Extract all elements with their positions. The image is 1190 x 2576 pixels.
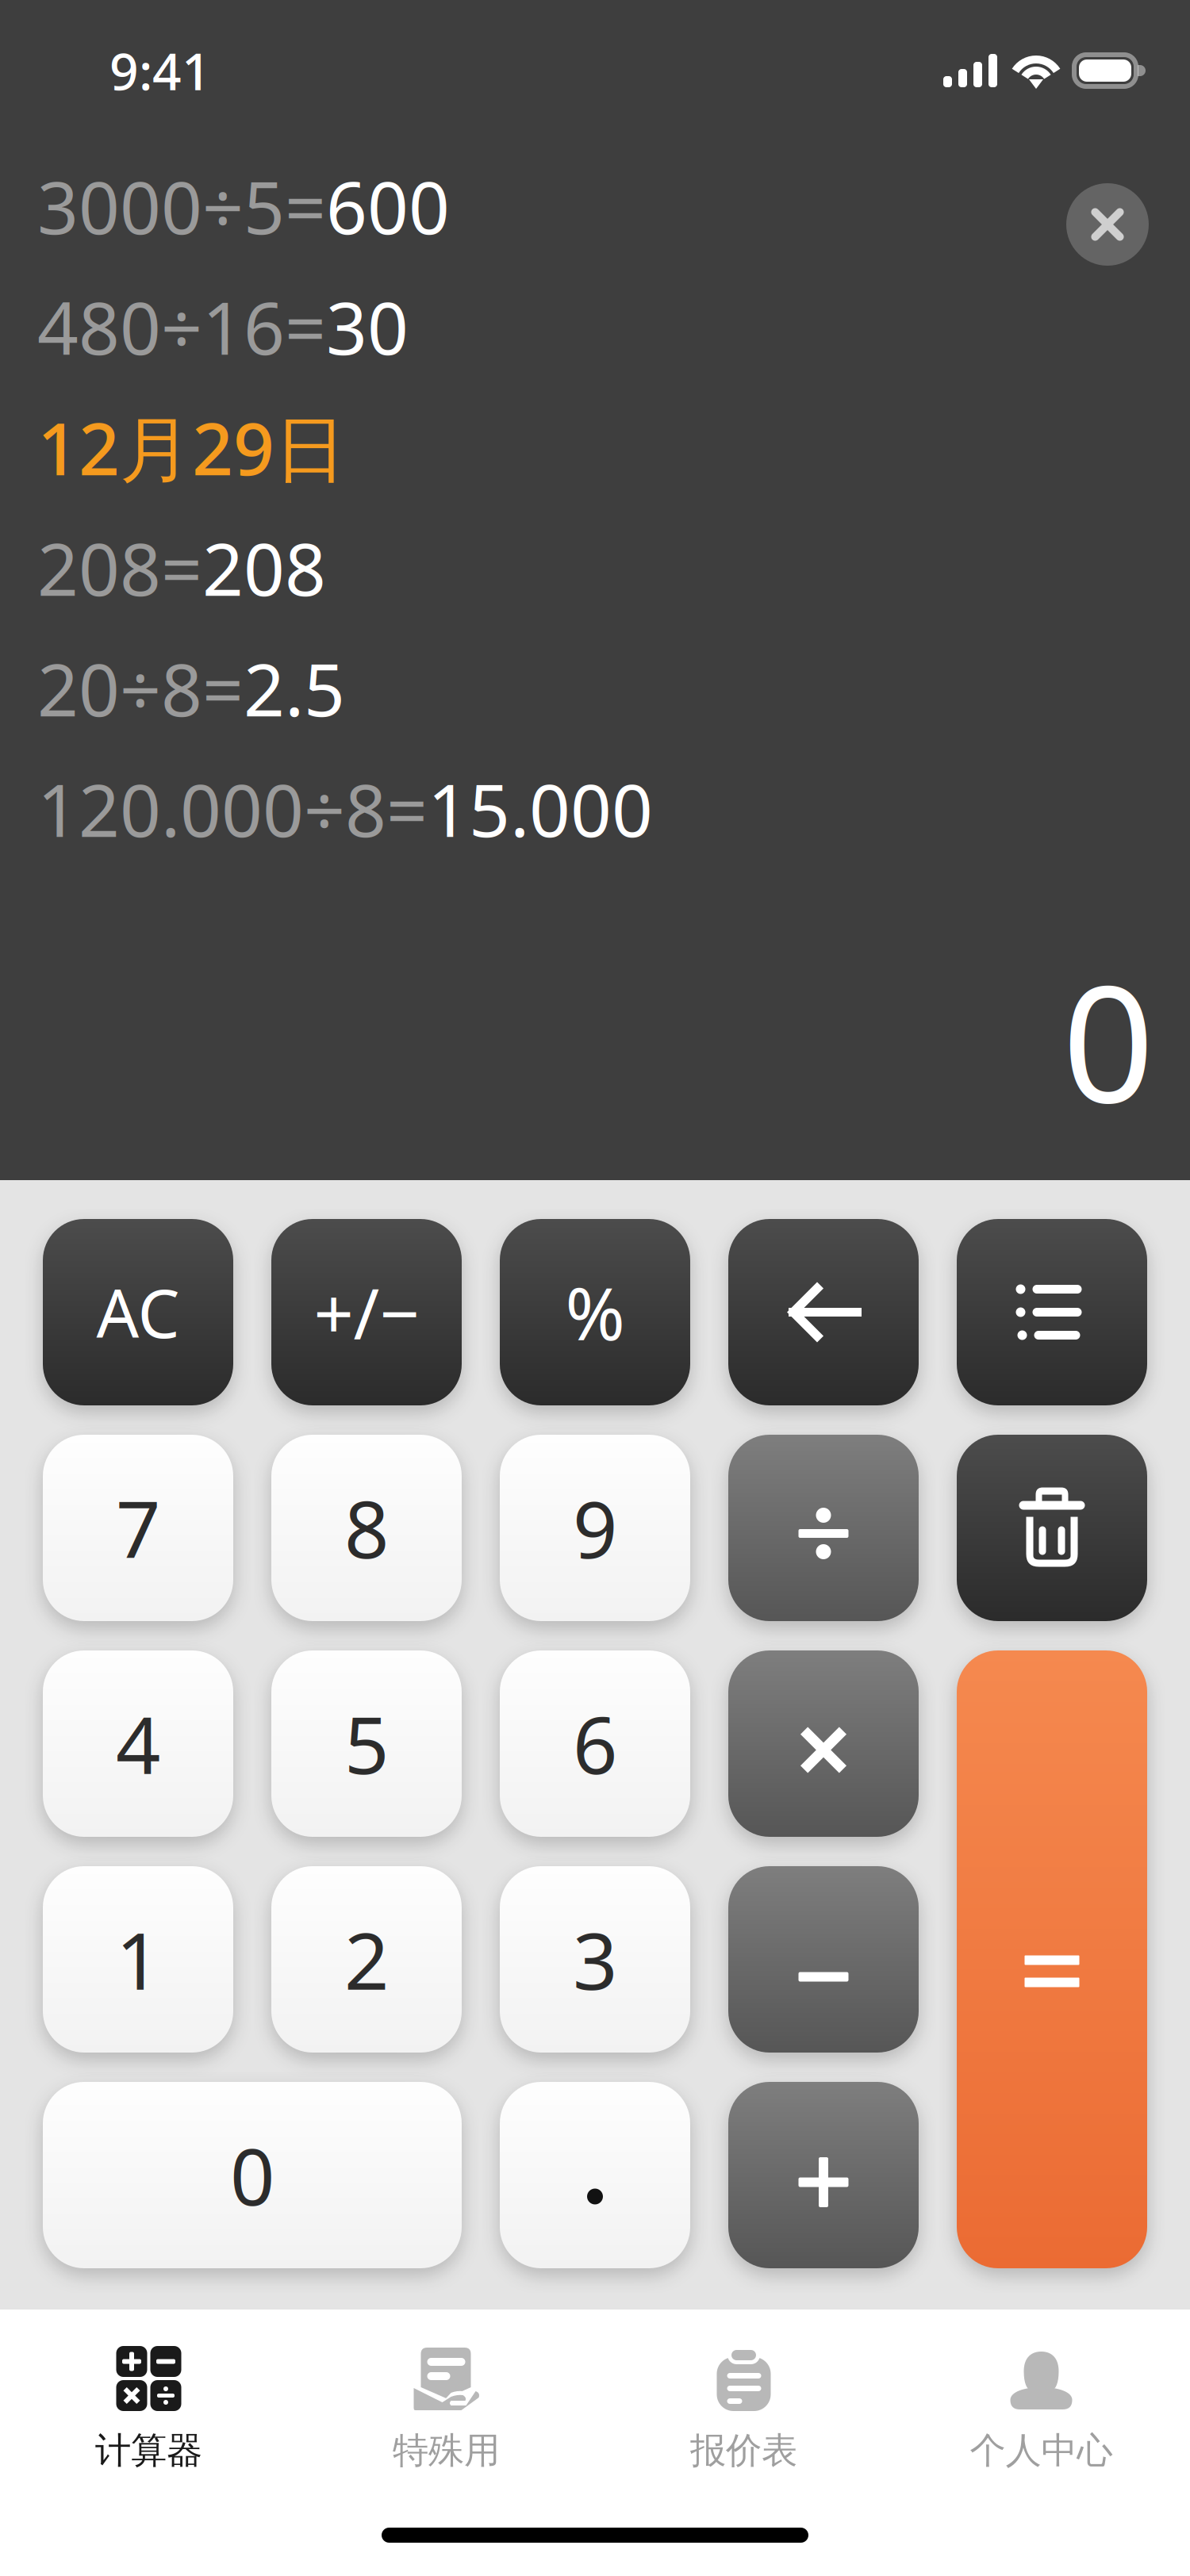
- button[interactable]: 3: [500, 1866, 690, 2053]
- button[interactable]: Clear history: [1066, 183, 1149, 266]
- staticText: 2: [344, 1907, 389, 2011]
- staticText: 6: [573, 1692, 617, 1796]
- button[interactable]: 报价表: [595, 2310, 892, 2484]
- button[interactable]: Decimal point: [500, 2082, 690, 2268]
- button[interactable]: 个人中心: [892, 2310, 1190, 2484]
- button[interactable]: Backspace: [728, 1219, 919, 1405]
- staticText: 特殊用: [393, 2428, 500, 2473]
- staticText: 0: [230, 2123, 274, 2227]
- staticText: 120.000÷8=: [37, 761, 428, 857]
- button[interactable]: 6: [500, 1650, 690, 1837]
- staticText: 8: [344, 1476, 389, 1580]
- button[interactable]: Minus: [728, 1866, 919, 2053]
- staticText: 5: [344, 1692, 389, 1796]
- button[interactable]: Equals: [957, 1650, 1147, 2268]
- button[interactable]: 特殊用: [297, 2310, 595, 2484]
- staticText: +/−: [314, 1266, 419, 1359]
- button[interactable]: AC: [43, 1219, 233, 1405]
- staticText: %: [565, 1264, 625, 1360]
- button[interactable]: 2: [271, 1866, 462, 2053]
- staticText: 4: [116, 1692, 160, 1796]
- staticText: 报价表: [690, 2428, 797, 2473]
- button[interactable]: +/−: [271, 1219, 462, 1405]
- button[interactable]: 1: [43, 1866, 233, 2053]
- staticText: 20÷8=: [37, 641, 244, 736]
- staticText: 600: [326, 158, 450, 254]
- staticText: 480÷16=: [37, 279, 326, 375]
- button[interactable]: 8: [271, 1435, 462, 1621]
- staticText: 15.000: [428, 761, 653, 857]
- button[interactable]: Plus: [728, 2082, 919, 2268]
- button[interactable]: 0: [43, 2082, 462, 2268]
- staticText: 7: [116, 1476, 160, 1580]
- button[interactable]: 4: [43, 1650, 233, 1837]
- button[interactable]: 5: [271, 1650, 462, 1837]
- button[interactable]: Multiply: [728, 1650, 919, 1837]
- staticText: 3000÷5=: [37, 158, 326, 254]
- staticText: 0: [1062, 933, 1154, 1147]
- button[interactable]: Delete: [957, 1435, 1147, 1621]
- staticText: 12月29日: [37, 400, 347, 495]
- button[interactable]: 计算器: [0, 2310, 297, 2484]
- button[interactable]: Divide: [728, 1435, 919, 1621]
- staticText: 208: [202, 520, 326, 616]
- staticText: AC: [96, 1268, 180, 1356]
- button[interactable]: 9: [500, 1435, 690, 1621]
- staticText: 3: [573, 1907, 617, 2011]
- staticText: 208=: [37, 520, 202, 616]
- button[interactable]: History: [957, 1219, 1147, 1405]
- button[interactable]: 7: [43, 1435, 233, 1621]
- staticText: 2.5: [244, 641, 345, 736]
- staticText: 个人中心: [970, 2428, 1113, 2473]
- button[interactable]: %: [500, 1219, 690, 1405]
- staticText: 9:41: [109, 37, 211, 104]
- staticText: 1: [116, 1907, 160, 2011]
- staticText: 30: [326, 279, 409, 375]
- staticText: 计算器: [95, 2428, 202, 2473]
- staticText: 9: [573, 1476, 617, 1580]
